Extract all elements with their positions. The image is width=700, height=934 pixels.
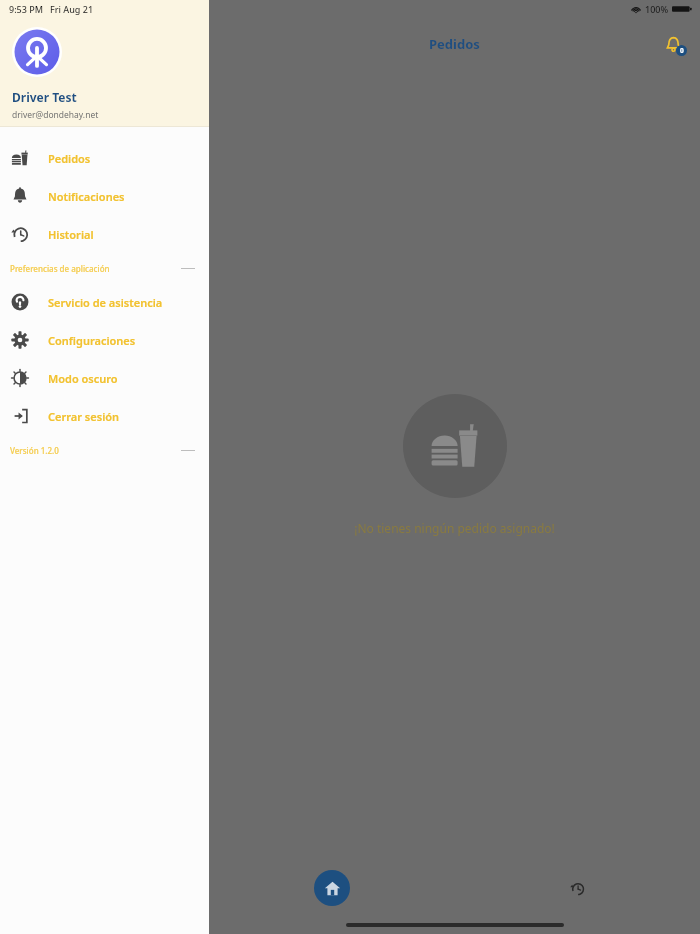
staticText: Pedidos xyxy=(48,151,91,166)
button[interactable]: Servicio de asistencia xyxy=(0,283,209,321)
button[interactable]: Pedidos xyxy=(0,139,209,177)
staticText: 0 xyxy=(680,46,684,55)
staticText: Configuraciones xyxy=(48,333,136,348)
staticText: Historial xyxy=(48,227,94,242)
staticText: Pedidos xyxy=(429,35,480,53)
button[interactable]: Notificaciones xyxy=(656,27,690,61)
button[interactable]: Configuraciones xyxy=(0,321,209,359)
staticText: driver@dondehay.net xyxy=(12,109,99,121)
button[interactable]: Notificaciones xyxy=(0,177,209,215)
button[interactable]: Cerrar sesión xyxy=(0,397,209,435)
staticText: Cerrar sesión xyxy=(48,409,120,424)
staticText: Versión 1.2.0 xyxy=(10,445,59,456)
button[interactable]: Inicio xyxy=(314,870,350,906)
staticText: Modo oscuro xyxy=(48,371,118,386)
staticText: Preferencias de aplicación xyxy=(10,263,110,274)
staticText: Servicio de asistencia xyxy=(48,295,163,310)
button[interactable]: Historial xyxy=(0,215,209,253)
staticText: Driver Test xyxy=(12,89,77,105)
button[interactable]: Modo oscuro xyxy=(0,359,209,397)
button[interactable]: Historial xyxy=(559,870,595,906)
staticText: Fri Aug 21 xyxy=(50,3,94,15)
staticText: Notificaciones xyxy=(48,189,125,204)
staticText: 9:53 PM xyxy=(9,3,43,15)
staticText: 100% xyxy=(645,3,669,15)
staticText: ¡No tienes ningún pedido asignado! xyxy=(354,520,555,536)
